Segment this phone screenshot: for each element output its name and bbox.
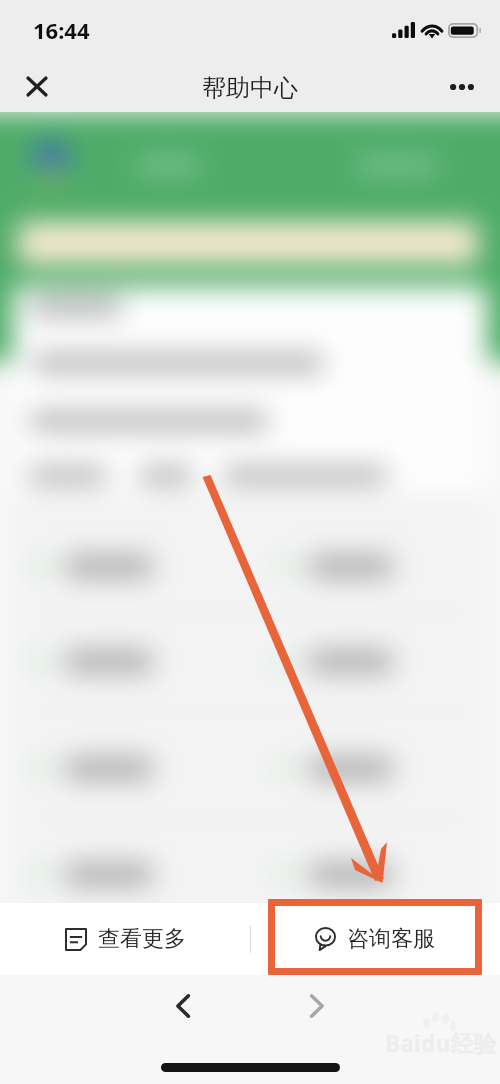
button[interactable]: More options — [442, 72, 482, 102]
button[interactable]: Forward — [300, 989, 334, 1023]
button[interactable]: Back — [166, 989, 200, 1023]
staticText: Baidu经验 — [385, 1027, 497, 1058]
staticText: 查看更多 — [98, 925, 186, 953]
staticText: 16:44 — [33, 15, 90, 45]
button[interactable]: Close — [20, 70, 54, 104]
staticText: 咨询客服 — [347, 925, 435, 953]
button[interactable]: 查看更多 — [0, 903, 250, 975]
staticText: 帮助中心 — [202, 73, 298, 103]
button[interactable]: 咨询客服 — [250, 903, 500, 975]
